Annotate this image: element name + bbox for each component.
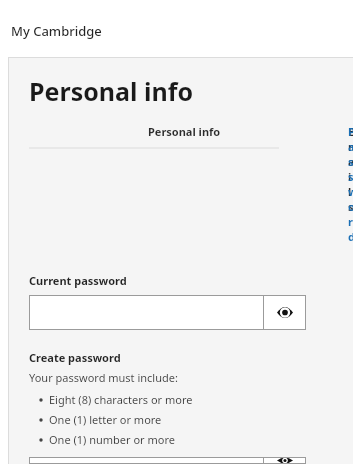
staticText: Personal info: [148, 124, 221, 139]
staticText: Eight (8) characters or more: [49, 392, 193, 407]
staticText: Current password: [29, 273, 127, 288]
staticText: Your password must include:: [29, 370, 178, 385]
button[interactable]: [29, 457, 263, 464]
staticText: My Cambridge: [11, 22, 102, 40]
button[interactable]: Show password: [264, 457, 306, 464]
button[interactable]: Show password: [264, 295, 306, 330]
staticText: One (1) letter or more: [49, 412, 162, 427]
staticText: Personal info: [29, 74, 194, 108]
button[interactable]: Personal info: [29, 124, 339, 144]
staticText: One (1) number or more: [49, 432, 175, 447]
button[interactable]: My Cambridge: [0, 0, 353, 57]
staticText: Create password: [29, 350, 121, 365]
button[interactable]: [29, 295, 263, 330]
